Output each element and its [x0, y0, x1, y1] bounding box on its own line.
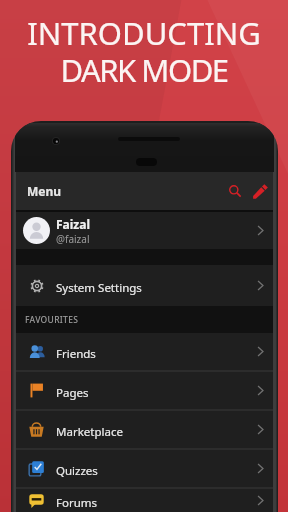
staticText: @faizal [56, 232, 90, 246]
button[interactable]: Quizzes [16, 450, 273, 487]
button[interactable]: Search [224, 180, 246, 202]
button[interactable]: Forums [16, 489, 273, 512]
button[interactable]: System Settings [16, 265, 273, 306]
staticText: System Settings [56, 280, 142, 296]
button[interactable]: Pages [16, 372, 273, 409]
staticText: INTRODUCTING [27, 12, 261, 54]
staticText: Faizal [56, 216, 91, 232]
staticText: Marketplace [56, 424, 123, 440]
button[interactable]: Compose [249, 180, 271, 202]
staticText: FAVOURITES [25, 314, 79, 326]
staticText: Forums [56, 495, 98, 511]
staticText: Friends [56, 346, 96, 362]
staticText: Quizzes [56, 463, 98, 479]
button[interactable]: Marketplace [16, 411, 273, 448]
staticText: Pages [56, 385, 89, 401]
staticText: Menu [27, 183, 62, 199]
button[interactable]: Friends [16, 333, 273, 370]
staticText: DARK MODE [60, 49, 228, 91]
button[interactable]: Faizal [16, 212, 273, 249]
